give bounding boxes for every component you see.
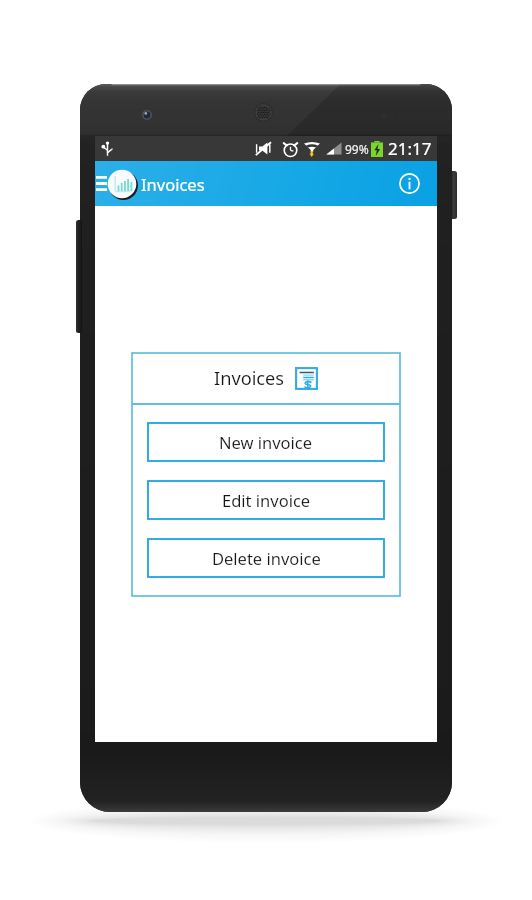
button[interactable]: Edit invoice bbox=[148, 481, 384, 519]
button[interactable]: Info bbox=[389, 161, 429, 206]
staticText: New invoice bbox=[219, 431, 313, 453]
button[interactable]: New invoice bbox=[148, 423, 384, 461]
staticText: 21:17 bbox=[388, 137, 432, 160]
staticText: 99% bbox=[345, 141, 369, 157]
staticText: Invoices bbox=[214, 366, 285, 391]
staticText: Edit invoice bbox=[222, 489, 311, 511]
button[interactable]: Open navigation menu bbox=[95, 161, 108, 206]
staticText: Delete invoice bbox=[212, 547, 321, 569]
button[interactable]: Delete invoice bbox=[148, 539, 384, 577]
staticText: Invoices bbox=[141, 173, 205, 195]
